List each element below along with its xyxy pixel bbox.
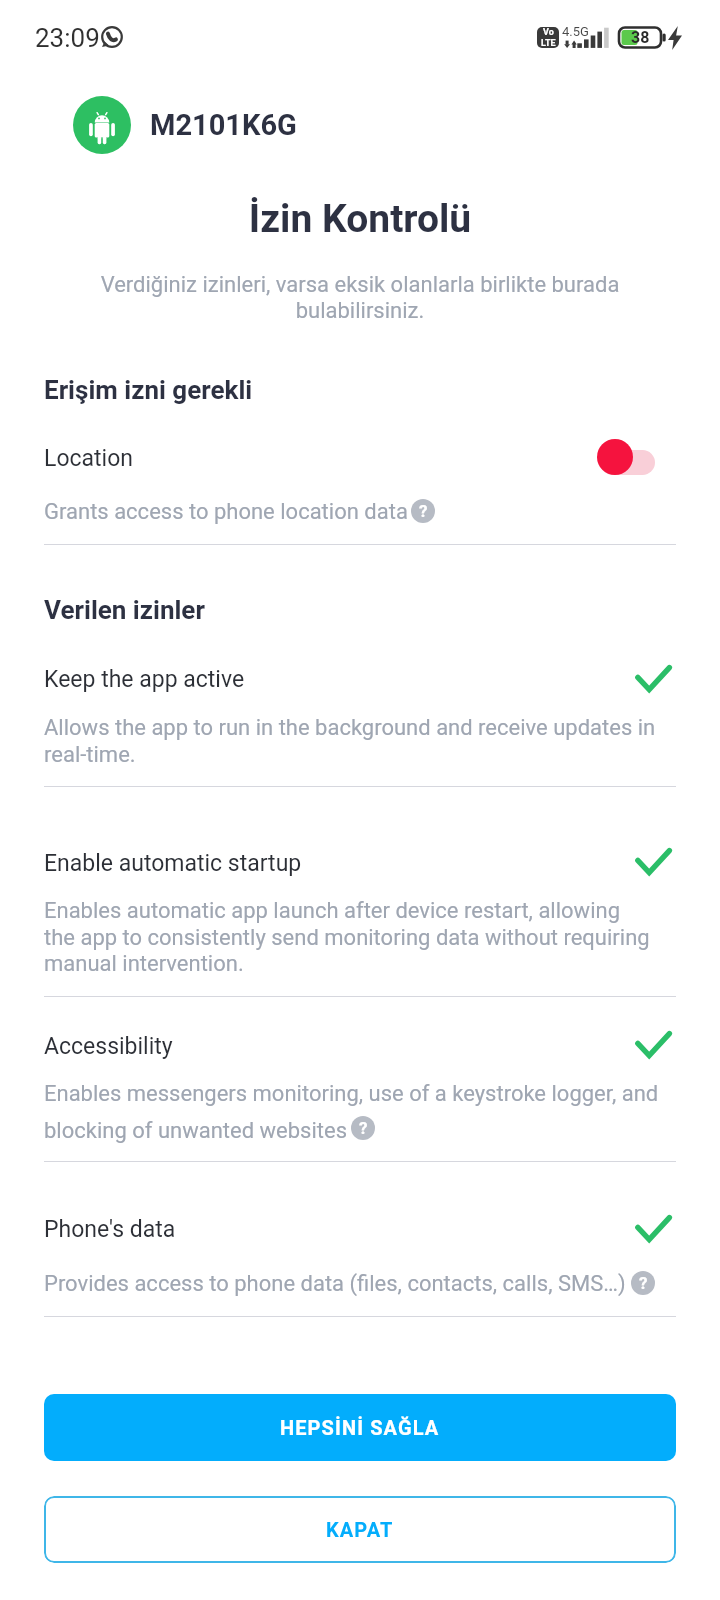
- staticText: Keep the app active: [44, 666, 245, 693]
- button[interactable]: Permission granted: [635, 665, 675, 695]
- button[interactable]: Permission granted: [635, 1031, 675, 1061]
- staticText: 38: [631, 28, 650, 47]
- staticText: Location: [44, 445, 133, 472]
- staticText: İzin Kontrolü: [0, 196, 720, 242]
- button[interactable]: Enable automatic startup: [0, 834, 720, 996]
- staticText: Phone's data: [44, 1216, 176, 1243]
- button[interactable]: Help: [351, 1116, 375, 1140]
- staticText: Enables messengers monitoring, use of a …: [44, 1081, 676, 1143]
- staticText: 23:09: [35, 23, 100, 53]
- button[interactable]: Accessibility: [0, 1017, 720, 1161]
- button[interactable]: HEPSİNİ SAĞLA: [44, 1394, 676, 1461]
- staticText: Accessibility: [44, 1033, 173, 1060]
- button[interactable]: KAPAT: [44, 1496, 676, 1563]
- button[interactable]: Help: [631, 1271, 655, 1295]
- button[interactable]: Location toggle: [597, 438, 657, 475]
- staticText: Grants access to phone location data: [44, 499, 676, 525]
- button[interactable]: Location: [0, 429, 720, 544]
- staticText: LTE: [541, 38, 556, 48]
- button[interactable]: Permission granted: [635, 1215, 675, 1245]
- staticText: ?: [359, 1118, 368, 1138]
- staticText: Verilen izinler: [44, 595, 205, 625]
- staticText: KAPAT: [326, 1518, 394, 1541]
- staticText: Allows the app to run in the background …: [44, 715, 676, 767]
- staticText: 4.5G: [562, 24, 589, 39]
- staticText: ?: [639, 1273, 648, 1293]
- staticText: Erişim izni gerekli: [44, 375, 253, 405]
- button[interactable]: Permission granted: [635, 848, 675, 878]
- staticText: Enable automatic startup: [44, 850, 302, 877]
- staticText: Verdiğiniz izinleri, varsa eksik olanlar…: [84, 272, 636, 323]
- button[interactable]: Phone's data: [0, 1200, 720, 1316]
- staticText: Enables automatic app launch after devic…: [44, 898, 676, 976]
- button[interactable]: Keep the app active: [0, 650, 720, 786]
- staticText: ?: [419, 501, 428, 521]
- staticText: M2101K6G: [150, 108, 297, 142]
- staticText: HEPSİNİ SAĞLA: [280, 1416, 440, 1439]
- button[interactable]: Help: [411, 499, 435, 523]
- staticText: Vo: [543, 27, 554, 38]
- staticText: Provides access to phone data (files, co…: [44, 1271, 676, 1297]
